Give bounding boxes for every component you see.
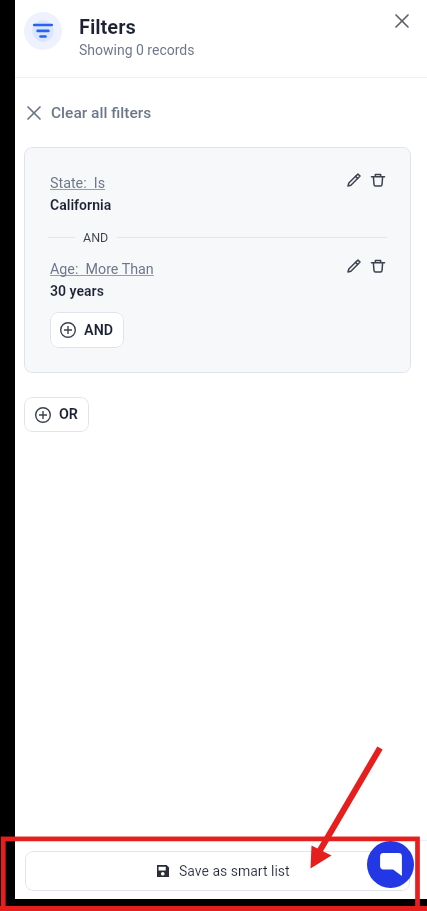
staticText: Showing 0 records [79, 42, 195, 58]
staticText: California [50, 197, 112, 213]
staticText: Save as smart list [179, 863, 290, 879]
button[interactable]: Chat [367, 841, 414, 888]
staticText: AND [84, 322, 114, 339]
button[interactable]: OR [24, 397, 89, 432]
staticText: Age: More Than [50, 261, 154, 278]
button[interactable]: Close [384, 3, 420, 39]
button[interactable]: AND [50, 312, 124, 348]
staticText: 30 years [50, 283, 104, 299]
button[interactable]: Clear all filters [24, 100, 156, 126]
button[interactable]: Delete [364, 166, 392, 194]
other: Filter [24, 12, 62, 50]
button[interactable]: Edit [340, 166, 368, 194]
button[interactable]: Delete [364, 252, 392, 280]
staticText: Filters [79, 15, 136, 38]
staticText: State: Is [50, 175, 106, 192]
staticText: OR [59, 406, 78, 423]
button[interactable]: Edit [340, 252, 368, 280]
staticText: Clear all filters [51, 104, 152, 122]
button[interactable]: Save as smart list [25, 851, 410, 891]
staticText: AND [83, 230, 109, 245]
